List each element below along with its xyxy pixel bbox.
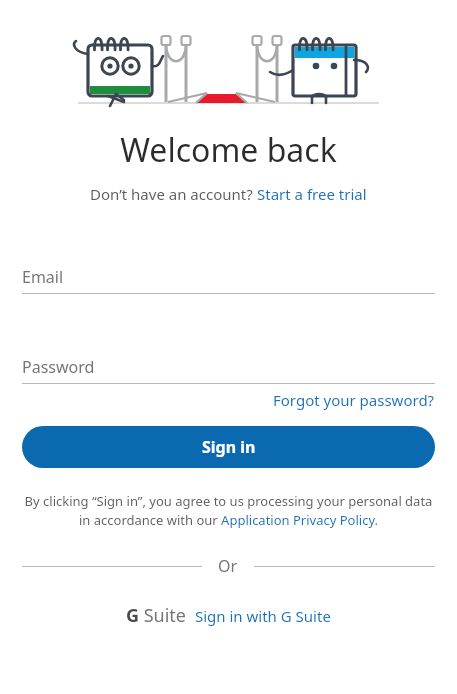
staticText: By clicking “Sign in”, you agree to us p… <box>22 492 435 529</box>
button[interactable]: Password <box>22 356 435 384</box>
staticText: G Suite <box>126 603 187 628</box>
staticText: Sign in <box>202 436 256 458</box>
staticText: Sign in with G Suite <box>195 606 331 626</box>
button[interactable]: Forgot your password? <box>273 390 435 410</box>
staticText: Don’t have an account? <box>90 184 257 204</box>
button[interactable]: Sign in <box>22 426 435 468</box>
button[interactable]: Start a free trial <box>257 184 367 204</box>
staticText: Password <box>22 356 95 378</box>
button[interactable]: Email <box>22 266 435 294</box>
staticText: Welcome back <box>0 128 457 172</box>
staticText: Email <box>22 266 64 288</box>
staticText: Forgot your password? <box>273 390 435 410</box>
staticText: Start a free trial <box>257 184 367 204</box>
staticText: Or <box>218 555 238 577</box>
button[interactable]: G Suite <box>0 603 457 628</box>
